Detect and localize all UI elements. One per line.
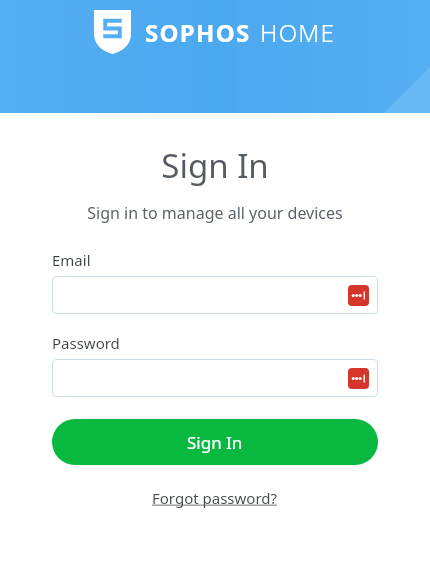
button[interactable]: Forgot password? bbox=[148, 486, 282, 510]
staticText: Email bbox=[52, 250, 91, 270]
button[interactable]: Email input bbox=[52, 276, 378, 314]
button[interactable]: Autofill bbox=[348, 368, 369, 389]
staticText: Password bbox=[52, 333, 120, 353]
staticText: Sign In bbox=[187, 431, 243, 454]
staticText: Sign In bbox=[161, 143, 269, 188]
button[interactable]: Sign In bbox=[52, 419, 378, 465]
staticText: Sign in to manage all your devices bbox=[87, 202, 343, 224]
button[interactable]: Password input bbox=[52, 359, 378, 397]
staticText: Forgot password? bbox=[152, 488, 278, 508]
button[interactable]: Autofill bbox=[348, 285, 369, 306]
staticText: SOPHOS bbox=[145, 16, 251, 49]
staticText: HOME bbox=[260, 16, 336, 49]
